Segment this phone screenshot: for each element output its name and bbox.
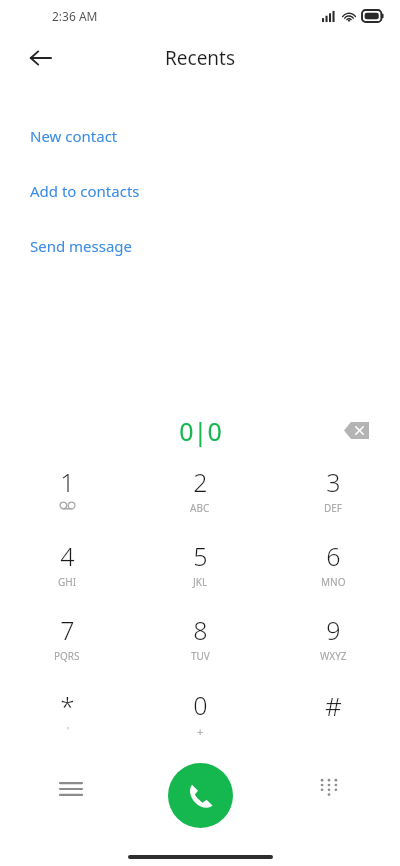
staticText: 4 <box>60 539 75 573</box>
button[interactable]: 2 <box>154 465 246 527</box>
button[interactable]: 6 <box>287 539 379 601</box>
staticText: New contact <box>30 126 118 146</box>
button[interactable]: Call <box>168 763 233 828</box>
staticText: 1 <box>60 465 75 499</box>
button[interactable]: Backspace <box>336 410 376 450</box>
staticText: ' <box>67 725 69 736</box>
staticText: Add to contacts <box>30 181 140 201</box>
button[interactable]: 4 <box>21 539 113 601</box>
button[interactable]: Call log <box>48 766 94 812</box>
staticText: * <box>60 688 75 723</box>
button[interactable]: Add to contacts <box>30 163 400 218</box>
staticText: 9 <box>326 613 341 647</box>
staticText: Send message <box>30 236 133 256</box>
button[interactable]: * <box>21 688 113 750</box>
staticText: ABC <box>190 501 210 515</box>
staticText: PQRS <box>54 649 80 663</box>
staticText: 0|0 <box>179 414 222 448</box>
button[interactable]: 7 <box>21 613 113 675</box>
staticText: 0 <box>193 688 208 722</box>
staticText: MNO <box>321 575 346 589</box>
staticText: Recents <box>165 45 236 71</box>
button[interactable]: # <box>287 688 379 750</box>
button[interactable]: 5 <box>154 539 246 601</box>
staticText: # <box>325 688 342 723</box>
staticText: + <box>197 724 204 739</box>
button[interactable]: Send message <box>30 218 400 273</box>
staticText: 7 <box>60 613 75 647</box>
staticText: GHI <box>58 575 77 589</box>
button[interactable]: 3 <box>287 465 379 527</box>
staticText: DEF <box>324 501 343 515</box>
staticText: 2 <box>193 465 208 499</box>
button[interactable]: 1 <box>21 465 113 527</box>
button[interactable]: Keypad <box>306 766 352 812</box>
staticText: 6 <box>326 539 341 573</box>
staticText: JKL <box>193 575 208 589</box>
button[interactable]: 9 <box>287 613 379 675</box>
staticText: 3 <box>326 465 341 499</box>
button[interactable]: Back <box>18 36 62 80</box>
button[interactable]: 8 <box>154 613 246 675</box>
staticText: 8 <box>193 613 208 647</box>
staticText: 5 <box>193 539 208 573</box>
staticText: 2:36 AM <box>52 8 98 24</box>
staticText: TUV <box>191 649 210 663</box>
button[interactable]: New contact <box>30 108 400 163</box>
button[interactable]: 0 <box>154 688 246 750</box>
staticText: WXYZ <box>320 649 347 663</box>
